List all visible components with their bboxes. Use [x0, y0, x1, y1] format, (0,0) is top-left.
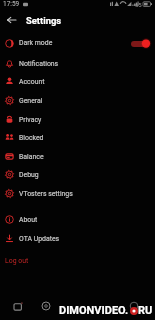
button[interactable]: Blocked [0, 129, 155, 146]
staticText: Account [19, 78, 45, 86]
staticText: Log out [5, 257, 29, 265]
button[interactable]: Recents [12, 300, 24, 312]
staticText: RU [138, 304, 153, 317]
staticText: Settings [26, 15, 62, 26]
staticText: Debug [19, 171, 39, 179]
button[interactable]: Log out [0, 253, 155, 269]
button[interactable]: VTosters settings [0, 185, 155, 202]
button[interactable]: General [0, 92, 155, 109]
staticText: DIMONVIDEO. [59, 304, 129, 317]
staticText: 17:59 [3, 0, 20, 8]
staticText: OTA Updates [19, 235, 60, 243]
staticText: General [19, 97, 43, 105]
button[interactable]: Dark mode [0, 33, 155, 53]
staticText: Dark mode [19, 39, 53, 47]
button[interactable]: Back [128, 300, 140, 312]
staticText: Blocked [19, 134, 44, 142]
button[interactable]: Notifications [0, 55, 155, 72]
staticText: VTosters settings [19, 190, 73, 198]
button[interactable]: Balance [0, 148, 155, 165]
button[interactable]: Debug [0, 166, 155, 183]
staticText: Balance [19, 153, 44, 161]
staticText: Privacy [19, 116, 42, 124]
button[interactable]: Privacy [0, 111, 155, 128]
button[interactable]: OTA Updates [0, 230, 155, 247]
staticText: Notifications [19, 60, 59, 68]
staticText: 65 [135, 1, 142, 8]
button[interactable]: Home [40, 300, 52, 312]
button[interactable]: Account [0, 73, 155, 90]
button[interactable]: Back [0, 11, 22, 29]
staticText: About [19, 216, 38, 224]
button[interactable]: About [0, 211, 155, 228]
